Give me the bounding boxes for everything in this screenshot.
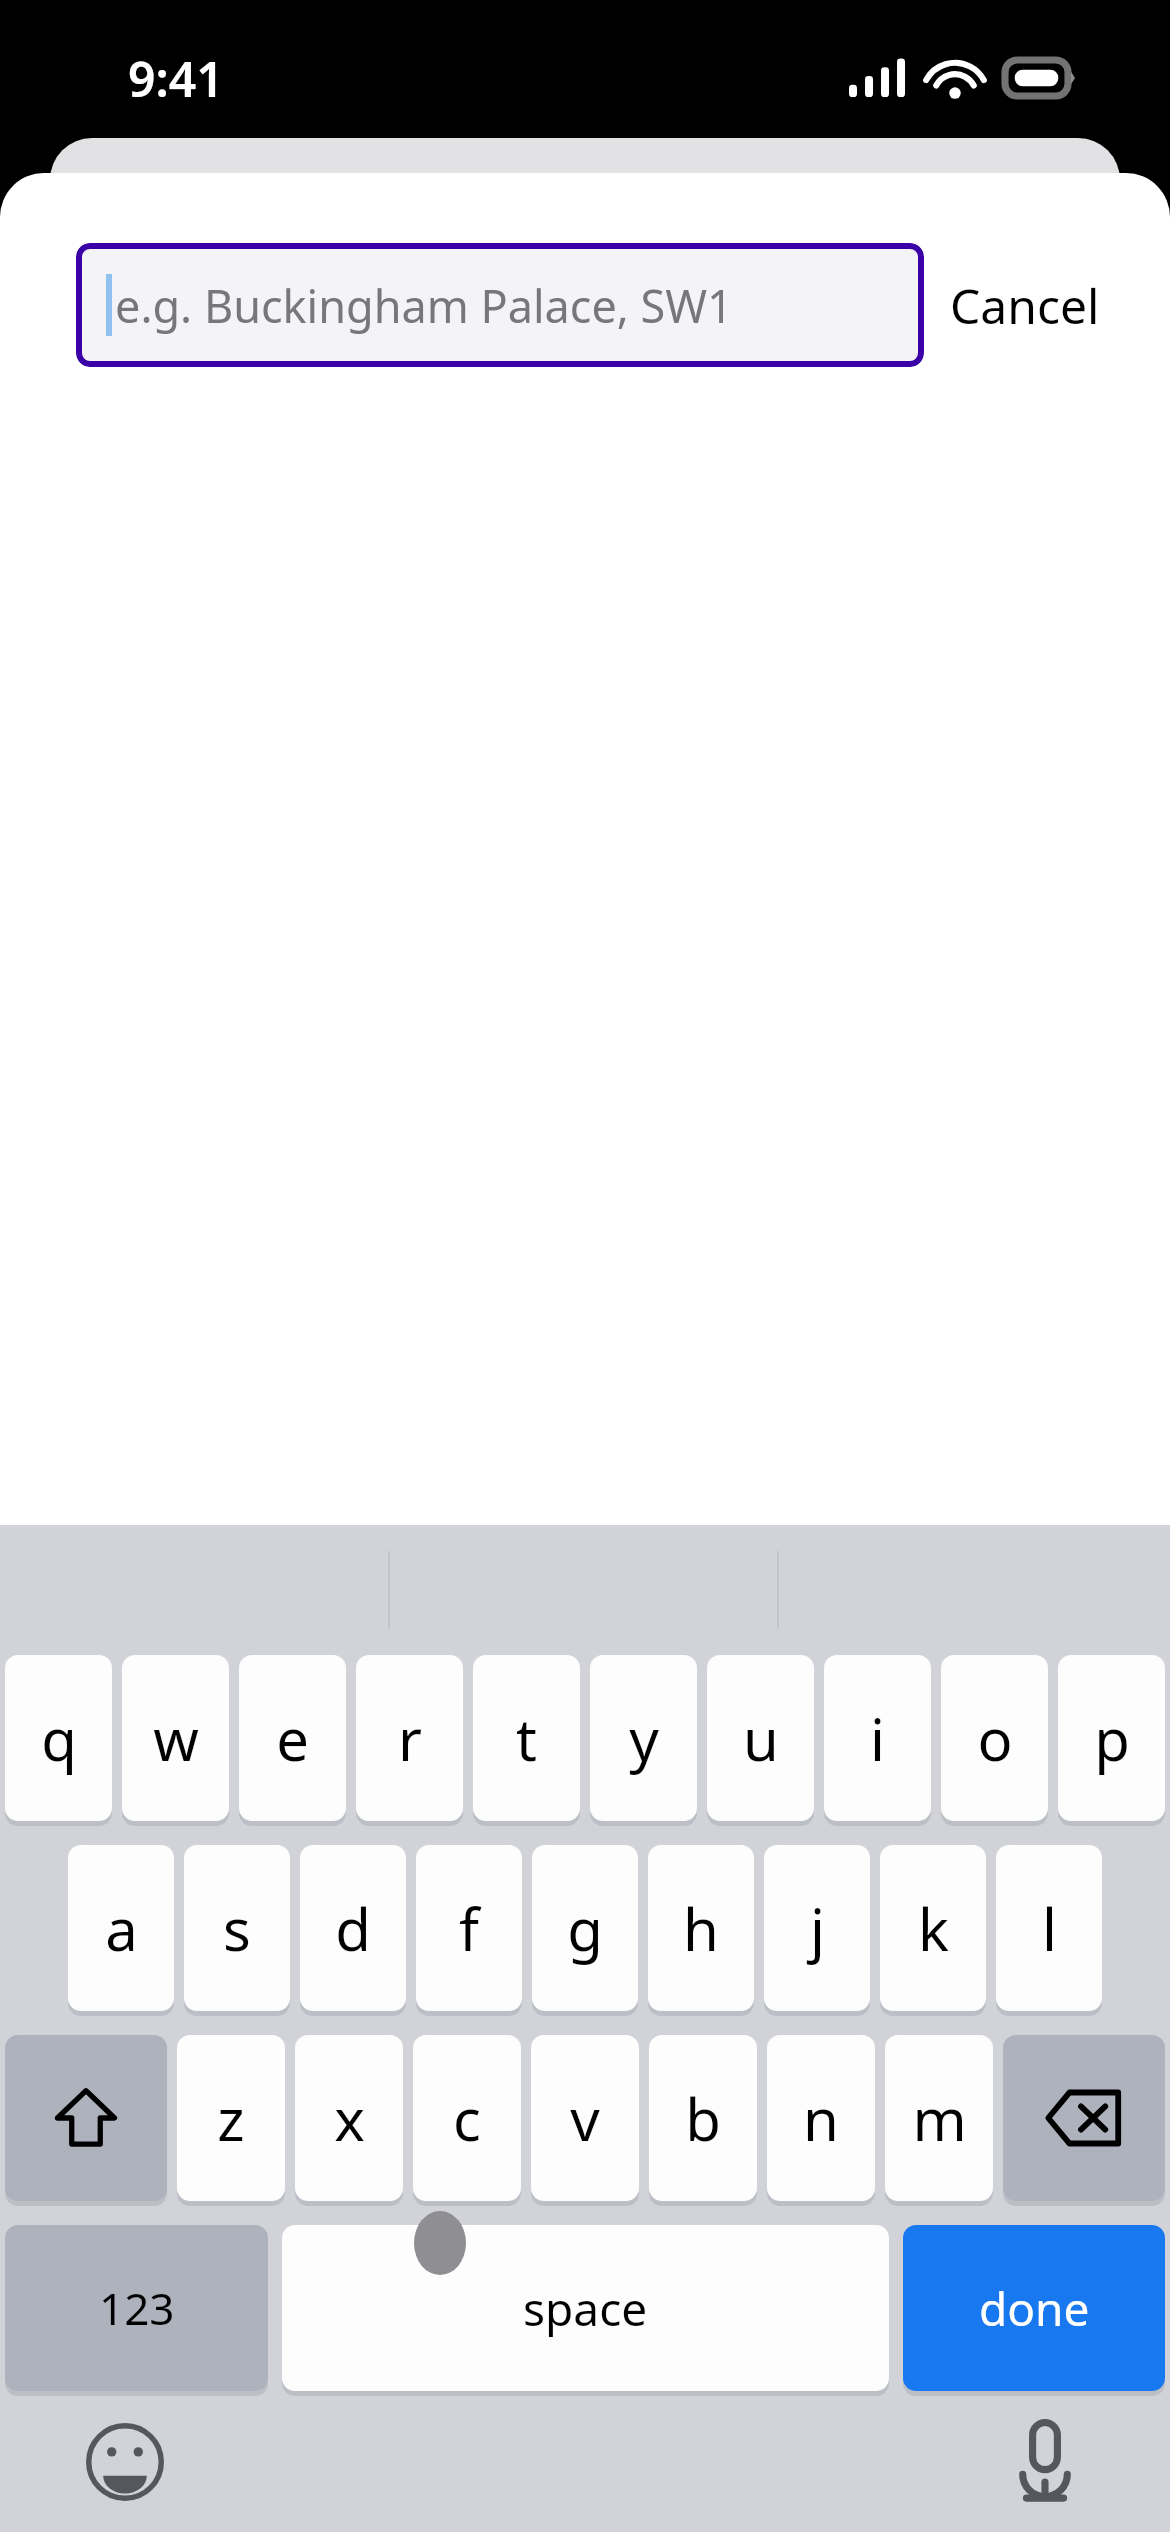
staticText: d [335, 1889, 371, 1968]
button[interactable]: a [68, 1845, 174, 2011]
button[interactable]: r [356, 1655, 463, 1821]
button[interactable]: z [177, 2035, 285, 2201]
button[interactable]: x [295, 2035, 403, 2201]
button[interactable]: space [282, 2225, 889, 2391]
staticText: s [223, 1889, 251, 1968]
button[interactable]: n [767, 2035, 875, 2201]
staticText: w [153, 1699, 199, 1778]
staticText: k [918, 1889, 949, 1968]
staticText: r [398, 1699, 422, 1778]
button[interactable]: s [184, 1845, 290, 2011]
staticText: n [803, 2079, 839, 2158]
button[interactable]: Cancel [924, 253, 1126, 358]
staticText: p [1094, 1699, 1130, 1778]
staticText: 9:41 [128, 46, 224, 111]
staticText: Cancel [950, 273, 1100, 338]
button[interactable]: k [880, 1845, 986, 2011]
staticText: h [683, 1889, 719, 1968]
button[interactable]: w [122, 1655, 229, 1821]
button[interactable]: o [941, 1655, 1048, 1821]
staticText: t [516, 1699, 537, 1778]
staticText: a [105, 1889, 138, 1968]
staticText: j [810, 1889, 825, 1968]
button[interactable]: i [824, 1655, 931, 1821]
staticText: x [334, 2079, 365, 2158]
button[interactable]: u [707, 1655, 814, 1821]
button[interactable]: q [5, 1655, 112, 1821]
button[interactable]: c [413, 2035, 521, 2201]
staticText: c [453, 2079, 481, 2158]
button[interactable]: 123 [5, 2225, 268, 2391]
button[interactable]: t [473, 1655, 580, 1821]
button[interactable]: Emoji keyboard [70, 2407, 180, 2517]
button[interactable]: l [996, 1845, 1102, 2011]
button[interactable]: Shift [5, 2035, 167, 2201]
staticText: z [217, 2079, 245, 2158]
button[interactable]: v [531, 2035, 639, 2201]
staticText: g [567, 1889, 603, 1968]
button[interactable]: Backspace [1003, 2035, 1165, 2201]
button[interactable]: Dictation [990, 2407, 1100, 2517]
staticText: q [41, 1699, 77, 1778]
staticText: 123 [99, 2278, 175, 2338]
button[interactable]: y [590, 1655, 697, 1821]
button[interactable]: e [239, 1655, 346, 1821]
button[interactable]: b [649, 2035, 757, 2201]
button[interactable]: g [532, 1845, 638, 2011]
staticText: l [1042, 1889, 1057, 1968]
staticText: o [977, 1699, 1013, 1778]
staticText: m [912, 2079, 967, 2158]
button[interactable]: e.g. Buckingham Palace, SW1 [76, 243, 924, 367]
button[interactable]: d [300, 1845, 406, 2011]
staticText: done [979, 2277, 1090, 2340]
staticText: v [570, 2079, 600, 2158]
button[interactable]: h [648, 1845, 754, 2011]
staticText: b [685, 2079, 721, 2158]
button[interactable]: p [1058, 1655, 1165, 1821]
staticText: u [743, 1699, 779, 1778]
staticText: y [629, 1699, 659, 1778]
button[interactable]: f [416, 1845, 522, 2011]
staticText: e [276, 1699, 309, 1778]
staticText: space [523, 2277, 648, 2340]
button[interactable]: m [885, 2035, 993, 2201]
staticText: e.g. Buckingham Palace, SW1 [115, 275, 733, 336]
button[interactable]: done [903, 2225, 1165, 2391]
staticText: i [870, 1699, 885, 1778]
button[interactable]: j [764, 1845, 870, 2011]
staticText: f [459, 1889, 479, 1968]
